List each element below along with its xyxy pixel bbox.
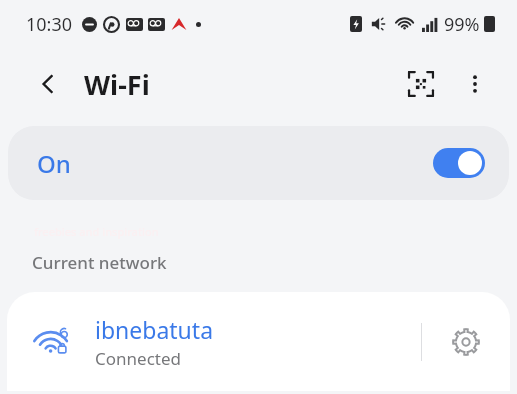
button[interactable]: More options xyxy=(453,62,497,106)
staticText: 10:30 xyxy=(26,12,73,37)
button[interactable]: ibnebatuta xyxy=(7,292,510,391)
button[interactable]: Scan QR code xyxy=(399,62,443,106)
staticText: Current network xyxy=(32,251,167,274)
staticText: Wi-Fi xyxy=(84,66,150,103)
staticText: ibnebatuta xyxy=(95,314,214,345)
button[interactable]: Back xyxy=(26,62,70,106)
button[interactable]: Network settings xyxy=(422,292,510,391)
button[interactable]: On xyxy=(8,126,509,200)
staticText: Connected xyxy=(95,347,181,370)
staticText: 99% xyxy=(444,12,480,37)
staticText: On xyxy=(37,147,71,180)
